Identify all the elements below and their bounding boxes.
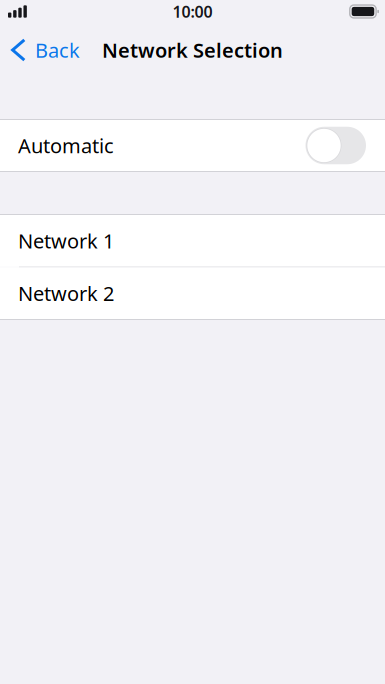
staticText: Automatic (18, 132, 114, 159)
button[interactable]: Network 2 (0, 267, 385, 319)
staticText: Network Selection (102, 37, 283, 63)
staticText: Back (35, 37, 80, 63)
button[interactable]: Network 1 (0, 215, 385, 266)
staticText: 10:00 (172, 1, 212, 22)
staticText: Network 1 (18, 227, 114, 254)
button[interactable]: Back (0, 28, 90, 72)
staticText: Network 2 (18, 280, 114, 307)
button[interactable]: Automatic (0, 120, 385, 171)
